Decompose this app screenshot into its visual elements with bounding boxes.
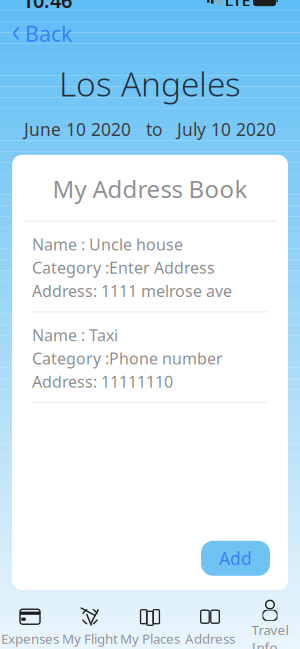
staticText: June 10 2020 to July 10 2020 [24, 118, 276, 141]
staticText: Address: 1111 melrose ave [32, 280, 232, 301]
staticText: Name : Taxi [32, 324, 118, 346]
staticText: Name : Uncle house [32, 234, 183, 255]
staticText: Category :Phone number [32, 348, 223, 369]
staticText: Address [185, 630, 235, 647]
staticText: Back [25, 19, 72, 47]
staticText: LTE [224, 0, 250, 11]
button[interactable]: Add [201, 541, 270, 576]
button[interactable]: Travel Info [240, 593, 300, 649]
staticText: My Flight [62, 630, 118, 647]
button[interactable]: Back [0, 15, 84, 51]
button[interactable]: Expenses [0, 602, 60, 649]
staticText: Category :Enter Address [32, 257, 215, 278]
staticText: My Places [120, 630, 180, 647]
staticText: My Address Book [52, 173, 247, 205]
staticText: Expenses [1, 630, 59, 647]
staticText: Travel Info [251, 621, 288, 649]
staticText: 10:46 [22, 0, 72, 14]
button[interactable]: My Flight [60, 602, 120, 649]
staticText: Los Angeles [59, 61, 241, 106]
staticText: Address: 11111110 [32, 371, 173, 392]
button[interactable]: Address [180, 602, 240, 649]
button[interactable]: My Places [120, 602, 180, 649]
staticText: Add [219, 547, 252, 570]
